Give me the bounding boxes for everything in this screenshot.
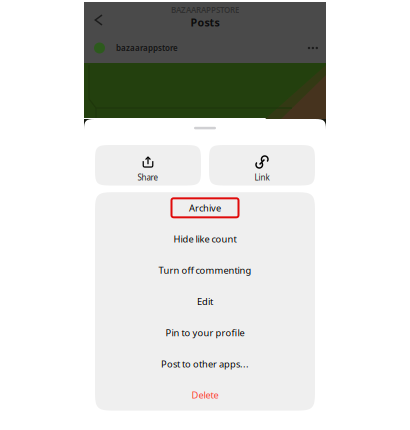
- staticText: Hide like count: [173, 233, 236, 245]
- button[interactable]: Edit: [95, 286, 315, 317]
- staticText: Post to other apps...: [161, 358, 249, 370]
- staticText: Archive: [189, 202, 221, 214]
- button[interactable]: Archive: [95, 192, 315, 223]
- button[interactable]: Hide like count: [95, 223, 315, 255]
- staticText: Turn off commenting: [158, 264, 251, 276]
- button[interactable]: Delete: [95, 379, 315, 411]
- staticText: Posts: [190, 15, 219, 29]
- staticText: BAZAARAPPSTORE: [171, 5, 239, 15]
- button[interactable]: Post to other apps...: [95, 348, 315, 379]
- staticText: Share: [137, 172, 158, 183]
- button[interactable]: Turn off commenting: [95, 255, 315, 286]
- button[interactable]: Share: [95, 145, 201, 185]
- button[interactable]: Back: [84, 2, 112, 32]
- button[interactable]: Link: [209, 145, 315, 185]
- staticText: Delete: [191, 389, 218, 401]
- staticText: Link: [254, 172, 269, 183]
- staticText: bazaarappstore: [116, 43, 178, 53]
- staticText: Pin to your profile: [165, 326, 244, 339]
- button[interactable]: Pin to your profile: [95, 317, 315, 348]
- button[interactable]: More options: [304, 43, 322, 53]
- staticText: Edit: [197, 295, 213, 308]
